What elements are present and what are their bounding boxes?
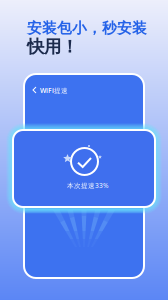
staticText: 快用！: [27, 36, 78, 57]
staticText: 安装包小，秒安装: [27, 19, 147, 37]
staticText: WiFi提速: [40, 86, 68, 95]
staticText: 本次提速33%: [67, 181, 109, 190]
